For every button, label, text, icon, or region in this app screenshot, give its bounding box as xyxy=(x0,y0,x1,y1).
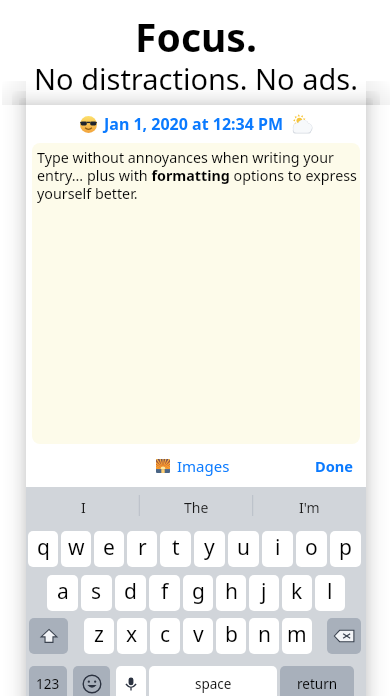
button[interactable]: k xyxy=(282,575,312,611)
staticText: I xyxy=(81,498,86,517)
button[interactable]: Dictate xyxy=(116,666,146,696)
staticText: c xyxy=(160,620,171,649)
button[interactable]: u xyxy=(228,531,259,567)
staticText: i xyxy=(275,533,281,562)
staticText: q xyxy=(37,533,50,562)
button[interactable]: v xyxy=(183,618,213,654)
button[interactable]: c xyxy=(150,618,180,654)
staticText: n xyxy=(258,620,271,649)
staticText: j xyxy=(261,577,267,606)
button[interactable]: 123 xyxy=(29,666,67,696)
button[interactable]: Images xyxy=(156,450,230,482)
button[interactable]: s xyxy=(81,575,112,611)
button[interactable]: h xyxy=(216,575,246,611)
button[interactable]: return xyxy=(280,666,354,696)
staticText: b xyxy=(225,620,238,649)
staticText: t xyxy=(172,533,180,562)
button[interactable]: y xyxy=(194,531,225,567)
staticText: x xyxy=(126,620,138,649)
button[interactable]: n xyxy=(249,618,279,654)
button[interactable]: z xyxy=(84,618,114,654)
button[interactable]: w xyxy=(61,531,91,567)
button[interactable]: I xyxy=(26,491,140,524)
staticText: The xyxy=(184,498,209,517)
button[interactable]: b xyxy=(216,618,246,654)
staticText: a xyxy=(57,577,69,606)
button[interactable]: Emoji keyboard xyxy=(73,666,110,696)
button[interactable]: p xyxy=(330,531,361,567)
staticText: o xyxy=(305,533,318,562)
staticText: space xyxy=(195,675,232,693)
button[interactable]: l xyxy=(315,575,345,611)
staticText: Type without annoyances when writing you… xyxy=(37,148,359,203)
button[interactable]: j xyxy=(249,575,279,611)
staticText: f xyxy=(161,577,169,606)
button[interactable]: a xyxy=(47,575,78,611)
button[interactable]: space xyxy=(149,666,277,696)
staticText: g xyxy=(192,577,205,606)
staticText: h xyxy=(225,577,238,606)
button[interactable]: g xyxy=(183,575,213,611)
staticText: k xyxy=(291,577,303,606)
button[interactable]: i xyxy=(262,531,293,567)
staticText: Focus. xyxy=(0,10,392,63)
staticText: No distractions. No ads. xyxy=(0,59,392,98)
staticText: l xyxy=(327,577,333,606)
button[interactable]: f xyxy=(149,575,180,611)
staticText: I'm xyxy=(299,498,320,517)
staticText: Jan 1, 2020 at 12:34 PM xyxy=(104,113,284,135)
button[interactable]: x xyxy=(117,618,147,654)
button[interactable]: o xyxy=(296,531,327,567)
staticText: v xyxy=(193,620,204,649)
staticText: p xyxy=(339,533,352,562)
button[interactable]: Done xyxy=(301,450,366,482)
staticText: Done xyxy=(315,456,354,476)
button[interactable]: Shift xyxy=(29,618,68,654)
staticText: r xyxy=(138,533,147,562)
button[interactable]: m xyxy=(282,618,312,654)
button[interactable]: q xyxy=(28,531,58,567)
staticText: w xyxy=(68,533,85,562)
button[interactable]: t xyxy=(160,531,191,567)
staticText: u xyxy=(237,533,250,562)
button[interactable]: I'm xyxy=(253,491,366,524)
staticText: 123 xyxy=(36,675,60,693)
button[interactable]: Backspace xyxy=(327,618,361,654)
staticText: Images xyxy=(177,456,230,476)
button[interactable]: r xyxy=(127,531,157,567)
button[interactable]: The xyxy=(140,491,253,524)
staticText: m xyxy=(287,620,307,649)
staticText: e xyxy=(103,533,115,562)
staticText: d xyxy=(124,577,137,606)
staticText: s xyxy=(91,577,102,606)
button[interactable]: e xyxy=(94,531,124,567)
staticText: return xyxy=(297,675,338,693)
staticText: z xyxy=(94,620,104,649)
button[interactable]: d xyxy=(115,575,146,611)
staticText: y xyxy=(204,533,215,562)
